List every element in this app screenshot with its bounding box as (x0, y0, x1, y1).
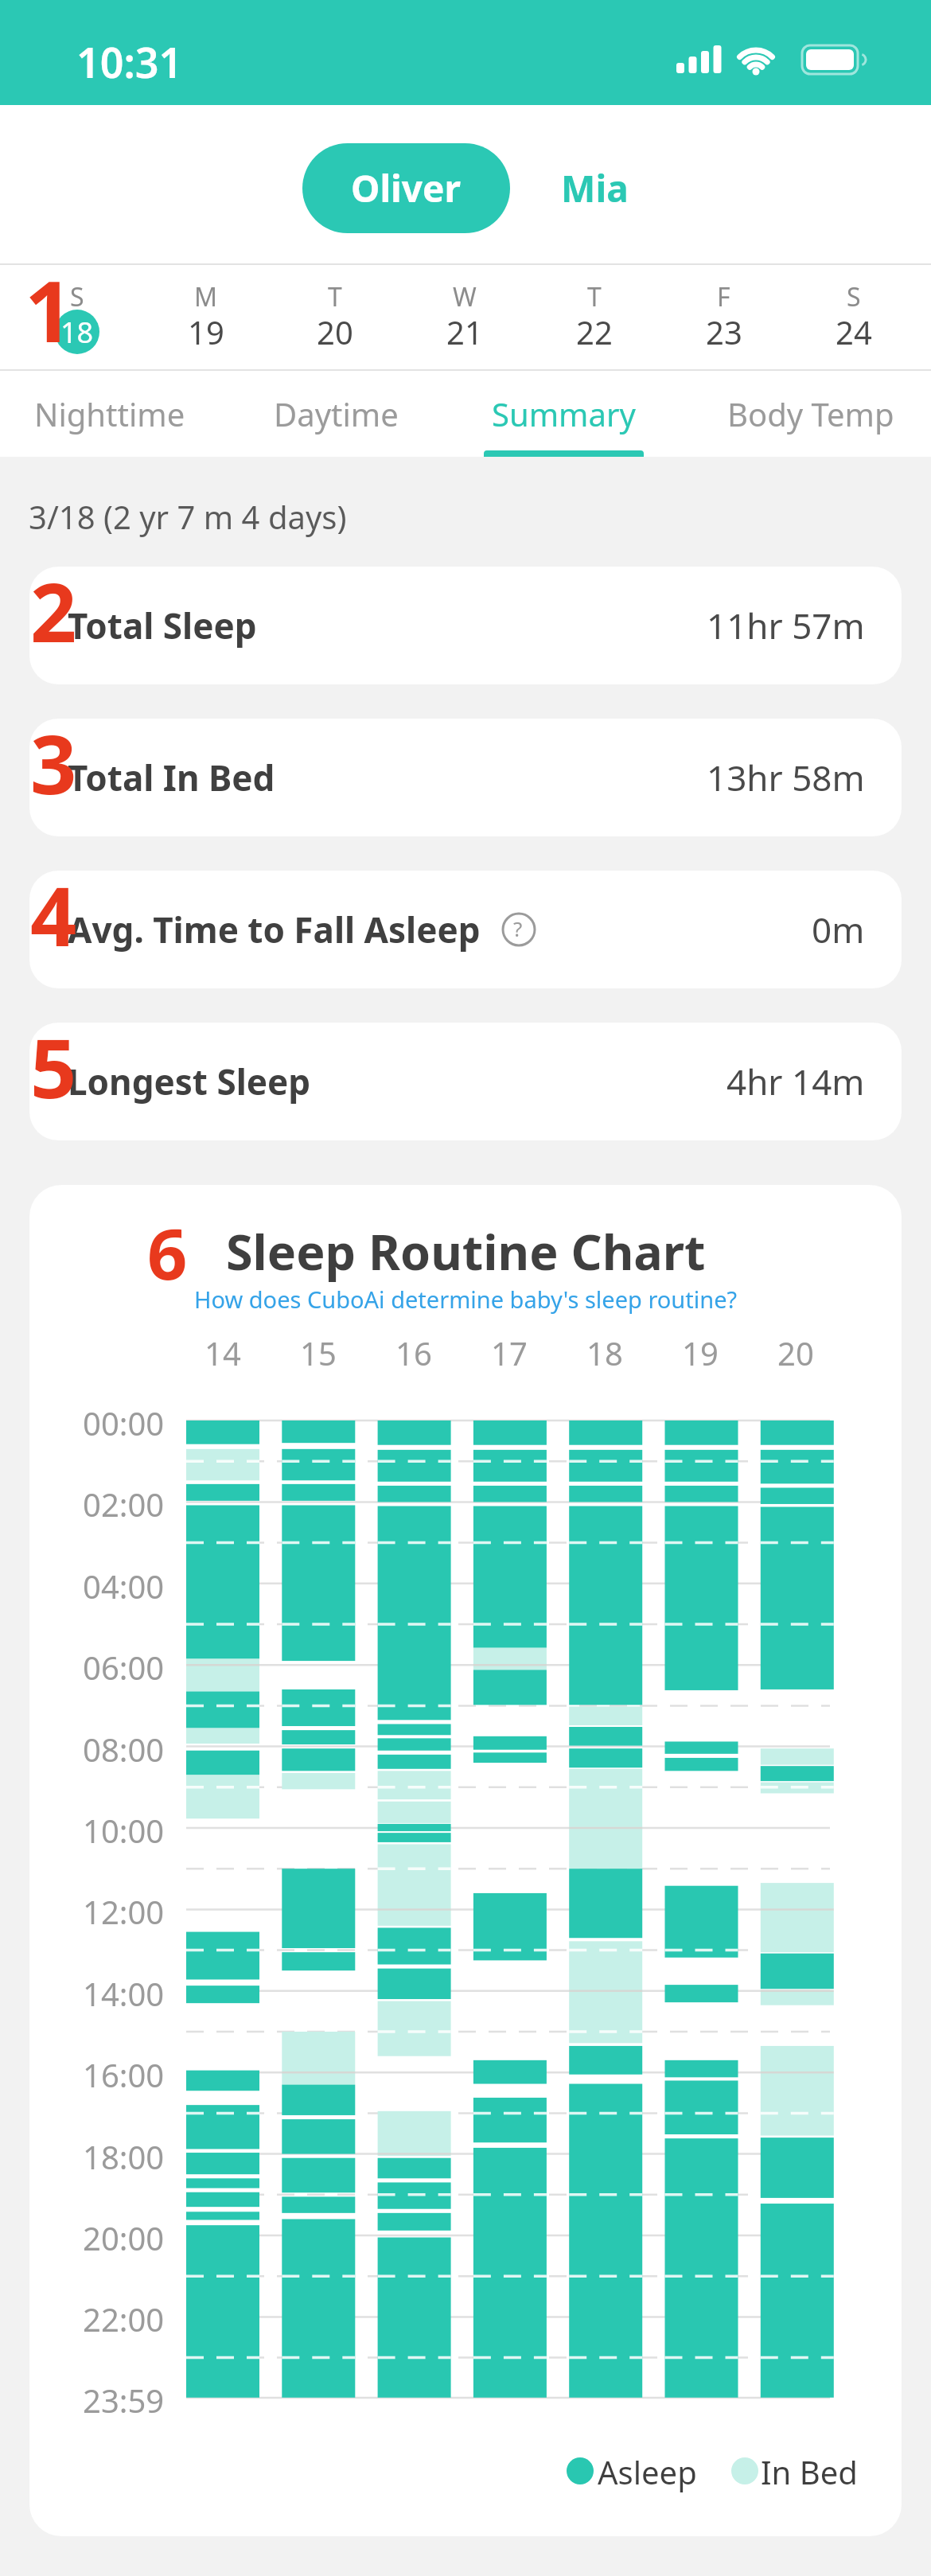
staticText: 5 (30, 1023, 77, 1122)
staticText: 08:00 (83, 1728, 165, 1771)
staticText: S (70, 279, 84, 314)
staticText: T (328, 279, 342, 314)
staticText: Total In Bed (68, 754, 275, 801)
button[interactable]: Daytime (232, 371, 439, 457)
staticText: Mia (561, 163, 629, 213)
staticText: 02:00 (83, 1483, 165, 1526)
staticText: 20 (777, 1331, 814, 1374)
staticText: 24 (836, 310, 872, 353)
staticText: 13hr 58m (707, 754, 865, 801)
staticText: 3 (30, 719, 77, 818)
staticText: Body Temp (727, 392, 894, 435)
staticText: 00:00 (83, 1401, 165, 1444)
staticText: 3/18 (2 yr 7 m 4 days) (29, 495, 347, 538)
button[interactable]: T (529, 265, 659, 369)
button[interactable]: Summary (460, 371, 667, 457)
staticText: 21 (446, 310, 483, 353)
staticText: 22:00 (83, 2297, 165, 2340)
staticText: 06:00 (83, 1646, 165, 1689)
staticText: 04:00 (83, 1565, 165, 1608)
button[interactable]: T (271, 265, 399, 369)
staticText: 20:00 (83, 2216, 165, 2259)
staticText: 16:00 (83, 2053, 165, 2096)
button[interactable]: How does CuboAi determine baby's sleep r… (194, 1284, 738, 1315)
staticText: 17 (491, 1331, 528, 1374)
staticText: ? (513, 914, 523, 942)
staticText: Sleep Routine Chart (226, 1218, 706, 1284)
staticText: 20 (317, 310, 353, 353)
button[interactable]: Nighttime (6, 371, 213, 457)
staticText: 23 (706, 310, 742, 353)
staticText: Avg. Time to Fall Asleep (68, 906, 481, 953)
staticText: 18 (60, 313, 94, 352)
staticText: M (194, 279, 218, 314)
staticText: 10:31 (76, 33, 183, 90)
staticText: Asleep (598, 2450, 697, 2493)
staticText: 23:59 (83, 2379, 165, 2422)
button[interactable]: F (659, 265, 789, 369)
staticText: 11hr 57m (707, 602, 865, 649)
staticText: 14 (205, 1331, 241, 1374)
staticText: How does CuboAi determine baby's sleep r… (194, 1284, 738, 1315)
staticText: Nighttime (34, 392, 185, 435)
staticText: 2 (30, 567, 77, 666)
staticText: 10:00 (83, 1809, 165, 1852)
staticText: Oliver (351, 163, 462, 213)
staticText: 22 (576, 310, 613, 353)
staticText: Longest Sleep (68, 1058, 311, 1105)
staticText: 18:00 (83, 2135, 165, 2178)
button[interactable]: W (399, 265, 529, 369)
button[interactable]: Avg. Time to Fall Asleep (29, 871, 902, 988)
button[interactable]: Mia (549, 143, 641, 233)
button[interactable]: Oliver (302, 143, 510, 233)
staticText: Summary (492, 392, 636, 435)
staticText: Daytime (274, 392, 399, 435)
staticText: 1 (25, 252, 73, 357)
button[interactable]: Longest Sleep (29, 1023, 902, 1140)
staticText: 6 (147, 1205, 188, 1300)
staticText: 4 (30, 871, 77, 970)
staticText: In Bed (761, 2450, 858, 2493)
staticText: Total Sleep (68, 602, 257, 649)
button[interactable]: Total Sleep (29, 567, 902, 684)
staticText: 18 (586, 1331, 623, 1374)
button[interactable]: S (13, 265, 142, 369)
staticText: S (847, 279, 861, 314)
button[interactable]: Body Temp (707, 371, 914, 457)
staticText: 4hr 14m (726, 1058, 865, 1105)
staticText: 14:00 (83, 1972, 165, 2015)
staticText: 19 (188, 310, 224, 353)
staticText: 0m (812, 906, 865, 953)
staticText: 19 (682, 1331, 719, 1374)
button[interactable]: Total In Bed (29, 719, 902, 836)
staticText: 16 (395, 1331, 432, 1374)
button[interactable]: S (789, 265, 918, 369)
staticText: 15 (300, 1331, 337, 1374)
staticText: W (453, 279, 477, 314)
staticText: F (717, 279, 730, 314)
staticText: 12:00 (83, 1890, 165, 1933)
staticText: T (587, 279, 602, 314)
button[interactable]: M (142, 265, 271, 369)
